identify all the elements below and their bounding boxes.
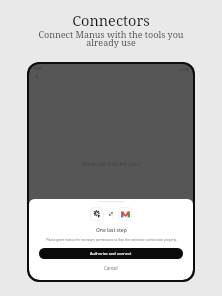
staticText: Connectors [72,10,150,30]
staticText: Please grant manus the necessary permiss… [46,238,177,242]
other: Manus [90,207,104,221]
staticText: Cancel [104,265,118,271]
other: Gmail [118,207,132,221]
staticText: Authorize and connect [90,251,132,256]
button[interactable]: Cancel [39,263,183,273]
staticText: One last step [96,227,127,234]
staticText: 9:41 [34,66,42,71]
staticText: Connect Manus with the tools you already… [33,28,189,48]
staticText: What can I do for you? [82,160,141,168]
button[interactable]: Authorize and connect [39,248,183,259]
